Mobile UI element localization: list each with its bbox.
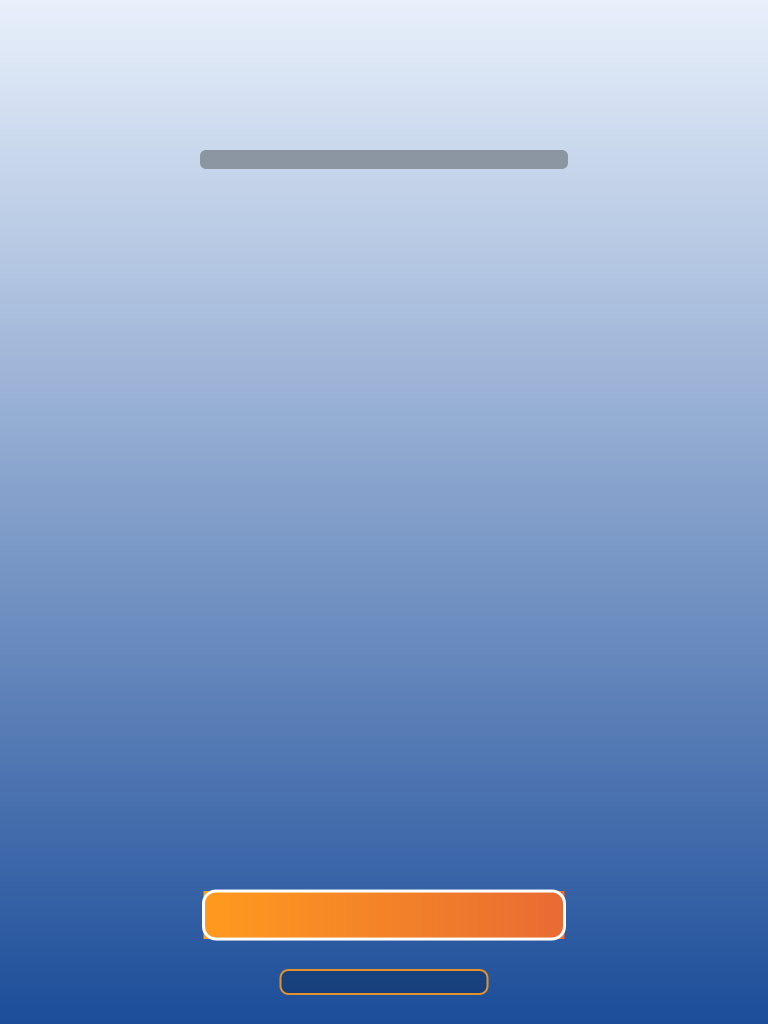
button[interactable]: Secondary action [280,970,487,994]
button[interactable]: Continue [203,891,564,939]
